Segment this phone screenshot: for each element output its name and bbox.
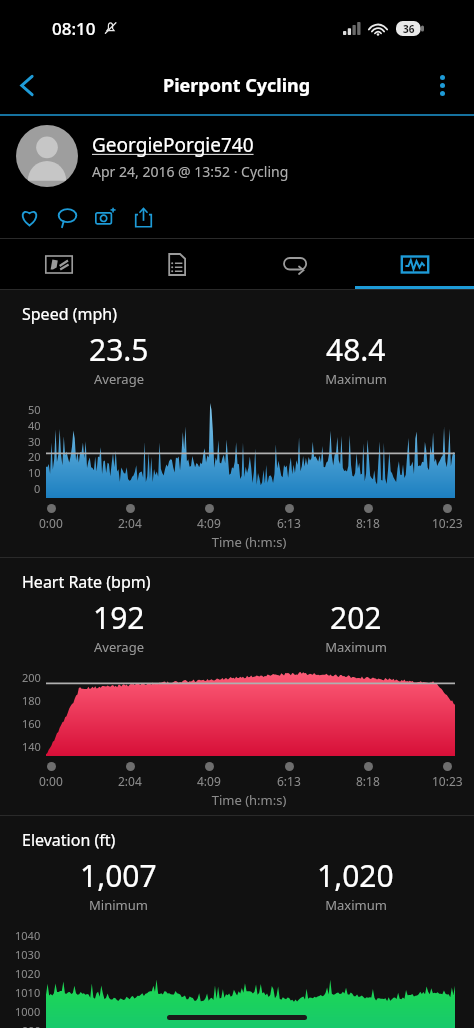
staticText: Elevation (ft) <box>22 829 116 851</box>
staticText: Time (h:m:s) <box>32 533 466 551</box>
staticText: 10:23 <box>432 773 463 789</box>
staticText: 1,020 <box>317 855 394 896</box>
staticText: 0 <box>34 481 41 496</box>
staticText: 50 <box>28 402 41 417</box>
staticText: Apr 24, 2016 @ 13:52 · Cycling <box>92 162 289 181</box>
staticText: 8:18 <box>356 515 380 531</box>
staticText: 1020 <box>15 966 41 981</box>
staticText: 0:00 <box>39 773 63 789</box>
staticText: 200 <box>22 670 41 685</box>
staticText: 10 <box>28 465 41 480</box>
staticText: 990 <box>22 1023 41 1028</box>
button[interactable]: Charts <box>355 239 474 289</box>
staticText: GeorgiePorgie740 <box>92 132 254 158</box>
button[interactable]: More options <box>420 63 464 107</box>
staticText: 1040 <box>15 928 41 943</box>
staticText: 1,007 <box>80 855 157 896</box>
staticText: 30 <box>28 434 41 449</box>
staticText: Speed (mph) <box>22 303 117 325</box>
staticText: Time (h:m:s) <box>32 791 466 809</box>
button[interactable]: Add photo <box>86 197 124 237</box>
staticText: 160 <box>22 716 41 731</box>
staticText: 20 <box>28 449 41 464</box>
staticText: 8:18 <box>356 773 380 789</box>
staticText: 1030 <box>15 947 41 962</box>
button[interactable]: Like <box>10 197 48 237</box>
button[interactable]: Details <box>118 239 236 289</box>
staticText: 2:04 <box>118 773 142 789</box>
staticText: Average <box>94 638 144 656</box>
staticText: 48.4 <box>326 329 386 370</box>
staticText: 4:09 <box>197 773 221 789</box>
button[interactable]: Share <box>124 197 162 237</box>
staticText: 4:09 <box>197 515 221 531</box>
staticText: 6:13 <box>277 515 301 531</box>
staticText: 2:04 <box>118 515 142 531</box>
staticText: Maximum <box>325 896 387 914</box>
staticText: Minimum <box>89 896 148 914</box>
staticText: 36 <box>403 22 415 36</box>
staticText: Pierpont Cycling <box>163 73 311 98</box>
staticText: 1000 <box>15 1004 41 1019</box>
staticText: 140 <box>22 739 41 754</box>
staticText: 202 <box>330 597 382 638</box>
staticText: Average <box>94 370 144 388</box>
staticText: Maximum <box>325 370 387 388</box>
staticText: 40 <box>28 418 41 433</box>
staticText: 23.5 <box>89 329 149 370</box>
staticText: Maximum <box>325 638 387 656</box>
staticText: 192 <box>93 597 145 638</box>
staticText: 10:23 <box>432 515 463 531</box>
staticText: Heart Rate (bpm) <box>22 571 151 593</box>
staticText: 1010 <box>15 985 41 1000</box>
staticText: 0:00 <box>39 515 63 531</box>
staticText: 6:13 <box>277 773 301 789</box>
button[interactable]: Comment <box>48 197 86 237</box>
button[interactable]: Map <box>0 239 118 289</box>
button[interactable]: GeorgiePorgie740 <box>0 116 474 196</box>
staticText: 08:10 <box>52 17 96 40</box>
button[interactable]: Back <box>4 62 50 108</box>
button[interactable]: Laps <box>236 239 355 289</box>
staticText: 180 <box>22 693 41 708</box>
